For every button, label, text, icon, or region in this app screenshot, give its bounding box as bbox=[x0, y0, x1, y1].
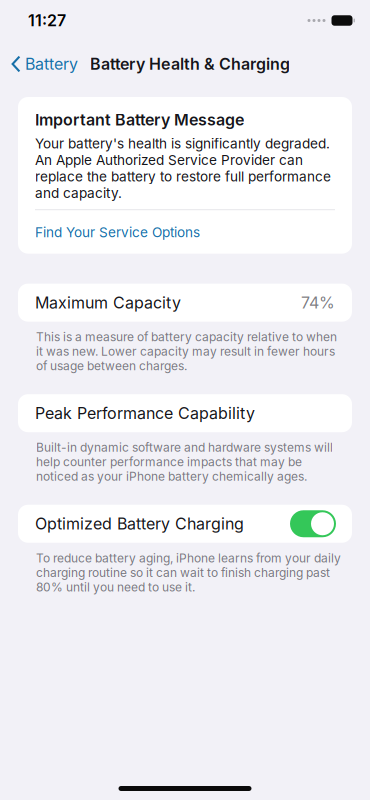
staticText: Important Battery Message bbox=[35, 110, 244, 129]
staticText: Maximum Capacity bbox=[35, 293, 181, 312]
button[interactable]: Find Your Service Options bbox=[35, 224, 335, 241]
staticText: Optimized Battery Charging bbox=[35, 514, 244, 533]
staticText: Find Your Service Options bbox=[35, 224, 200, 241]
staticText: This is a measure of battery capacity re… bbox=[36, 330, 337, 373]
button[interactable]: Peak Performance Capability bbox=[0, 394, 370, 432]
staticText: Built-in dynamic software and hardware s… bbox=[36, 440, 333, 484]
staticText: Battery Health & Charging bbox=[90, 54, 290, 74]
staticText: Battery bbox=[25, 54, 78, 74]
staticText: 74% bbox=[301, 293, 335, 312]
staticText: 11:27 bbox=[28, 11, 66, 30]
staticText: Your battery's health is significantly d… bbox=[35, 135, 331, 201]
staticText: Peak Performance Capability bbox=[35, 403, 255, 423]
button[interactable]: Optimized Battery Charging bbox=[0, 505, 370, 543]
button[interactable]: Maximum Capacity bbox=[0, 284, 370, 322]
staticText: To reduce battery aging, iPhone learns f… bbox=[36, 551, 341, 594]
button[interactable]: Battery bbox=[0, 47, 86, 81]
